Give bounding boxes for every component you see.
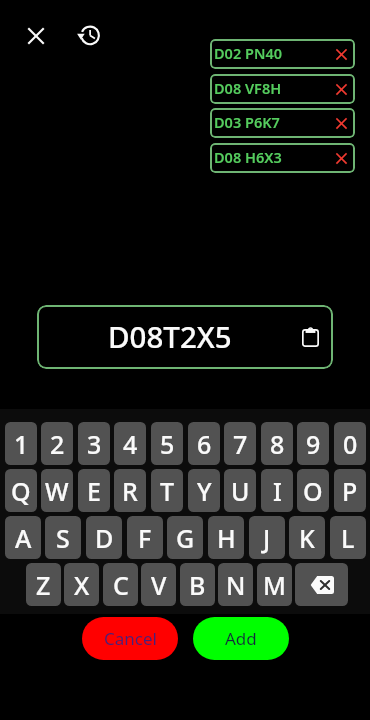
button[interactable]: D03 P6K7 bbox=[210, 108, 355, 138]
staticText: Z bbox=[36, 568, 51, 602]
button[interactable]: A bbox=[5, 516, 41, 559]
button[interactable]: Backspace bbox=[295, 563, 348, 606]
staticText: 3 bbox=[87, 427, 102, 461]
staticText: Add bbox=[225, 627, 257, 650]
staticText: B bbox=[189, 568, 206, 602]
staticText: V bbox=[151, 568, 167, 602]
button[interactable]: S bbox=[45, 516, 81, 559]
button[interactable]: Y bbox=[188, 469, 220, 512]
staticText: 8 bbox=[270, 427, 285, 461]
staticText: D08 VF8H bbox=[214, 78, 282, 98]
staticText: U bbox=[231, 474, 250, 508]
staticText: L bbox=[341, 521, 355, 555]
staticText: 0 bbox=[343, 427, 358, 461]
staticText: G bbox=[176, 521, 195, 555]
button[interactable]: 5 bbox=[151, 422, 183, 465]
button[interactable]: R bbox=[114, 469, 146, 512]
staticText: K bbox=[299, 521, 315, 555]
button[interactable]: I bbox=[261, 469, 293, 512]
button[interactable]: J bbox=[249, 516, 285, 559]
staticText: 1 bbox=[14, 427, 29, 461]
staticText: A bbox=[15, 521, 32, 555]
staticText: N bbox=[226, 568, 246, 602]
button[interactable]: Q bbox=[5, 469, 37, 512]
staticText: I bbox=[273, 474, 282, 508]
staticText: Cancel bbox=[104, 627, 157, 650]
button[interactable]: D08 H6X3 bbox=[210, 143, 355, 173]
button[interactable]: History bbox=[74, 20, 104, 50]
staticText: O bbox=[303, 474, 323, 508]
staticText: H bbox=[217, 521, 236, 555]
button[interactable]: N bbox=[218, 563, 253, 606]
button[interactable]: P bbox=[334, 469, 366, 512]
staticText: E bbox=[87, 474, 101, 508]
staticText: D08T2X5 bbox=[108, 316, 232, 356]
button[interactable]: F bbox=[127, 516, 163, 559]
button[interactable]: H bbox=[208, 516, 244, 559]
button[interactable]: Remove D02 PN40 bbox=[332, 45, 350, 63]
staticText: D08 H6X3 bbox=[214, 147, 282, 167]
staticText: P bbox=[342, 474, 358, 508]
button[interactable]: K bbox=[289, 516, 325, 559]
button[interactable]: T bbox=[151, 469, 183, 512]
button[interactable]: D02 PN40 bbox=[210, 39, 355, 69]
button[interactable]: 0 bbox=[334, 422, 366, 465]
button[interactable]: D08T2X5 bbox=[37, 305, 333, 369]
button[interactable]: Remove D08 VF8H bbox=[332, 80, 350, 98]
staticText: D bbox=[95, 521, 114, 555]
button[interactable]: L bbox=[330, 516, 366, 559]
button[interactable]: 1 bbox=[5, 422, 37, 465]
button[interactable]: 7 bbox=[224, 422, 256, 465]
button[interactable]: C bbox=[103, 563, 138, 606]
staticText: F bbox=[138, 521, 152, 555]
staticText: X bbox=[74, 568, 90, 602]
button[interactable]: M bbox=[257, 563, 292, 606]
button[interactable]: Close bbox=[21, 21, 50, 50]
staticText: 7 bbox=[233, 427, 248, 461]
button[interactable]: 2 bbox=[41, 422, 73, 465]
button[interactable]: Cancel bbox=[82, 617, 178, 660]
staticText: M bbox=[263, 568, 286, 602]
staticText: W bbox=[45, 474, 69, 508]
button[interactable]: G bbox=[167, 516, 203, 559]
staticText: D03 P6K7 bbox=[214, 112, 280, 132]
button[interactable]: 4 bbox=[114, 422, 146, 465]
button[interactable]: W bbox=[41, 469, 73, 512]
button[interactable]: Remove D08 H6X3 bbox=[332, 149, 350, 167]
staticText: T bbox=[160, 474, 175, 508]
staticText: C bbox=[113, 568, 129, 602]
staticText: J bbox=[263, 521, 271, 555]
staticText: 6 bbox=[197, 427, 212, 461]
staticText: 2 bbox=[50, 427, 65, 461]
staticText: S bbox=[56, 521, 70, 555]
staticText: 9 bbox=[306, 427, 321, 461]
button[interactable]: Z bbox=[26, 563, 61, 606]
button[interactable]: D08 VF8H bbox=[210, 74, 355, 104]
button[interactable]: U bbox=[224, 469, 256, 512]
button[interactable]: Paste from clipboard bbox=[295, 322, 325, 352]
button[interactable]: 6 bbox=[188, 422, 220, 465]
staticText: R bbox=[122, 474, 138, 508]
staticText: Q bbox=[11, 474, 31, 508]
button[interactable]: 3 bbox=[78, 422, 110, 465]
button[interactable]: Remove D03 P6K7 bbox=[332, 114, 350, 132]
button[interactable]: V bbox=[141, 563, 176, 606]
staticText: 5 bbox=[160, 427, 175, 461]
button[interactable]: E bbox=[78, 469, 110, 512]
button[interactable]: X bbox=[64, 563, 99, 606]
button[interactable]: O bbox=[297, 469, 329, 512]
staticText: Y bbox=[197, 474, 212, 508]
button[interactable]: 9 bbox=[297, 422, 329, 465]
button[interactable]: D bbox=[86, 516, 122, 559]
button[interactable]: Add bbox=[193, 617, 289, 660]
staticText: D02 PN40 bbox=[214, 43, 282, 63]
staticText: 4 bbox=[123, 427, 138, 461]
button[interactable]: B bbox=[180, 563, 215, 606]
button[interactable]: 8 bbox=[261, 422, 293, 465]
